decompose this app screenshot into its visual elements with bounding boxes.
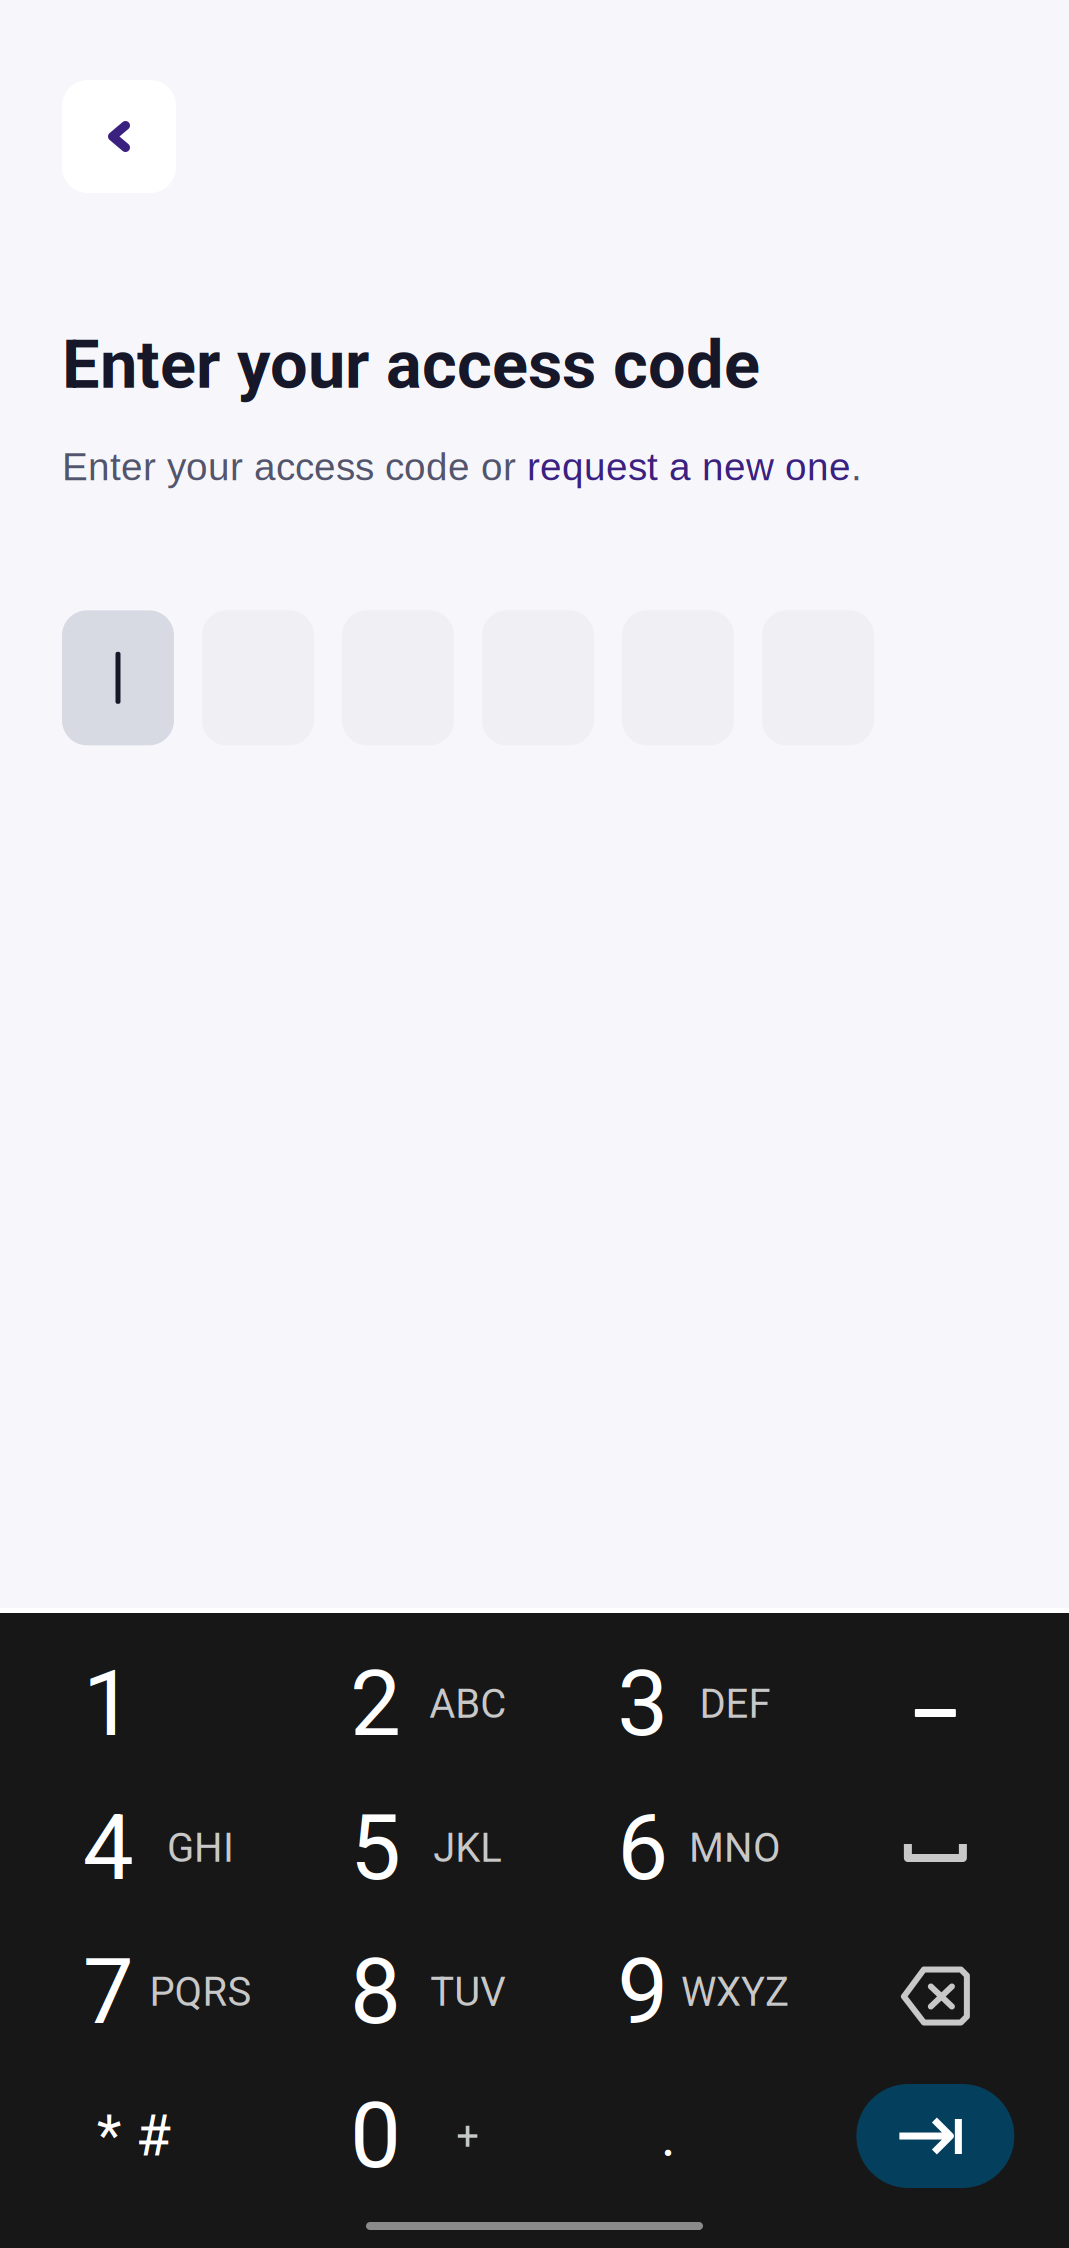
button[interactable]: 5: [267, 1776, 534, 1920]
button[interactable]: .: [534, 2064, 802, 2208]
staticText: 8: [350, 1939, 401, 2045]
staticText: Enter your access code or: [62, 445, 527, 488]
staticText: 5: [350, 1795, 401, 1901]
staticText: 6: [617, 1795, 668, 1901]
staticText: ABC: [429, 1681, 506, 1727]
button[interactable]: 7: [0, 1920, 267, 2064]
button[interactable]: Enter: [802, 2064, 1069, 2208]
button[interactable]: 9: [534, 1920, 802, 2064]
staticText: TUV: [430, 1969, 505, 2015]
button[interactable]: Space: [802, 1776, 1069, 1920]
button[interactable]: 2: [267, 1632, 534, 1776]
button[interactable]: 1: [0, 1632, 267, 1776]
staticText: 1: [83, 1651, 134, 1757]
button[interactable]: 0: [267, 2064, 534, 2208]
button[interactable]: Back: [62, 80, 176, 193]
staticText: DEF: [699, 1681, 770, 1727]
button[interactable]: request a new one: [527, 445, 851, 488]
staticText: MNO: [689, 1825, 781, 1871]
staticText: * #: [97, 2102, 171, 2170]
button[interactable]: * #: [0, 2064, 267, 2208]
button[interactable]: 4: [0, 1776, 267, 1920]
staticText: 4: [83, 1795, 134, 1901]
staticText: WXYZ: [681, 1969, 789, 2015]
staticText: 2: [350, 1651, 401, 1757]
staticText: Enter your access code: [62, 326, 760, 404]
button[interactable]: Backspace: [802, 1920, 1069, 2064]
staticText: PQRS: [149, 1969, 251, 2015]
staticText: JKL: [433, 1825, 502, 1871]
button[interactable]: Dash: [802, 1632, 1069, 1776]
button[interactable]: 8: [267, 1920, 534, 2064]
staticText: +: [456, 2113, 479, 2159]
staticText: .: [661, 2102, 676, 2170]
button[interactable]: 6: [534, 1776, 802, 1920]
staticText: request a new one: [527, 445, 851, 488]
staticText: .: [851, 445, 862, 488]
button[interactable]: 3: [534, 1632, 802, 1776]
staticText: 0: [350, 2083, 401, 2189]
staticText: GHI: [167, 1825, 234, 1871]
staticText: 3: [617, 1651, 668, 1757]
staticText: 7: [83, 1939, 134, 2045]
staticText: 9: [617, 1939, 668, 2045]
